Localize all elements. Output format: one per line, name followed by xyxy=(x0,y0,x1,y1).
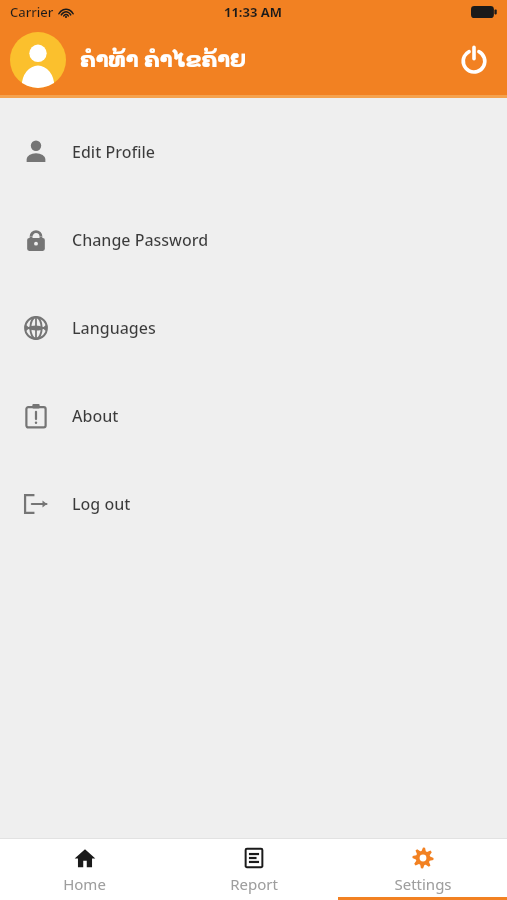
button[interactable]: About xyxy=(0,372,507,460)
staticText: Home xyxy=(63,874,106,894)
button[interactable]: Settings xyxy=(338,839,507,900)
button[interactable]: Profile photo xyxy=(10,32,66,88)
staticText: Settings xyxy=(394,874,452,894)
button[interactable]: Home xyxy=(0,839,169,900)
staticText: About xyxy=(72,405,119,427)
staticText: Languages xyxy=(72,317,156,339)
button[interactable]: Power / Logout xyxy=(451,37,497,83)
staticText: Change Password xyxy=(72,229,209,251)
staticText: ຄຳທ້າ ຄຳໄຂຄ້າຍ xyxy=(80,45,247,74)
button[interactable]: Languages xyxy=(0,284,507,372)
button[interactable]: Edit Profile xyxy=(0,108,507,196)
staticText: Log out xyxy=(72,493,131,515)
staticText: Edit Profile xyxy=(72,141,155,163)
button[interactable]: Change Password xyxy=(0,196,507,284)
button[interactable]: Report xyxy=(169,839,338,900)
staticText: Report xyxy=(230,874,278,894)
staticText: 11:33 AM xyxy=(224,3,283,21)
staticText: Carrier xyxy=(10,3,54,21)
button[interactable]: Log out xyxy=(0,460,507,548)
